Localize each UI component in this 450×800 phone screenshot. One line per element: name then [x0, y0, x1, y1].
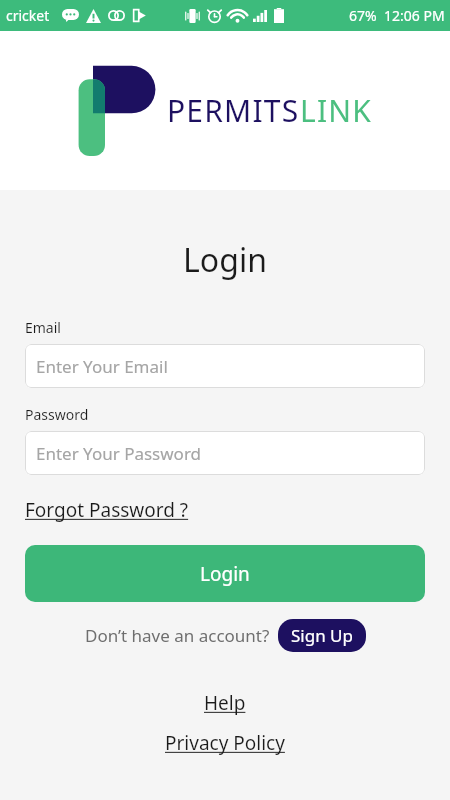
staticText: Login	[0, 238, 450, 282]
staticText: Sign Up	[291, 624, 353, 647]
staticText: cricket	[6, 6, 50, 25]
staticText: 12:06 PM	[384, 6, 445, 25]
staticText: Help	[204, 690, 246, 716]
staticText: PERMITS	[167, 90, 300, 131]
staticText: 67%	[349, 6, 377, 25]
staticText: Enter Your Email	[36, 355, 168, 378]
staticText: Login	[200, 561, 250, 587]
staticText: Enter Your Password	[36, 442, 202, 465]
button[interactable]: Sign Up	[278, 619, 366, 652]
staticText: LINK	[300, 90, 373, 131]
staticText: Privacy Policy	[165, 730, 285, 756]
button[interactable]: Help	[0, 690, 450, 716]
staticText: Don’t have an account?	[85, 624, 270, 647]
button[interactable]: Enter Your Password	[25, 431, 425, 475]
button[interactable]: Privacy Policy	[0, 730, 450, 756]
staticText: Password	[25, 405, 89, 424]
staticText: Forgot Password ?	[25, 497, 189, 523]
button[interactable]: Enter Your Email	[25, 344, 425, 388]
button[interactable]: Forgot Password ?	[25, 497, 189, 523]
button[interactable]: Login	[25, 545, 425, 602]
staticText: Email	[25, 318, 61, 337]
